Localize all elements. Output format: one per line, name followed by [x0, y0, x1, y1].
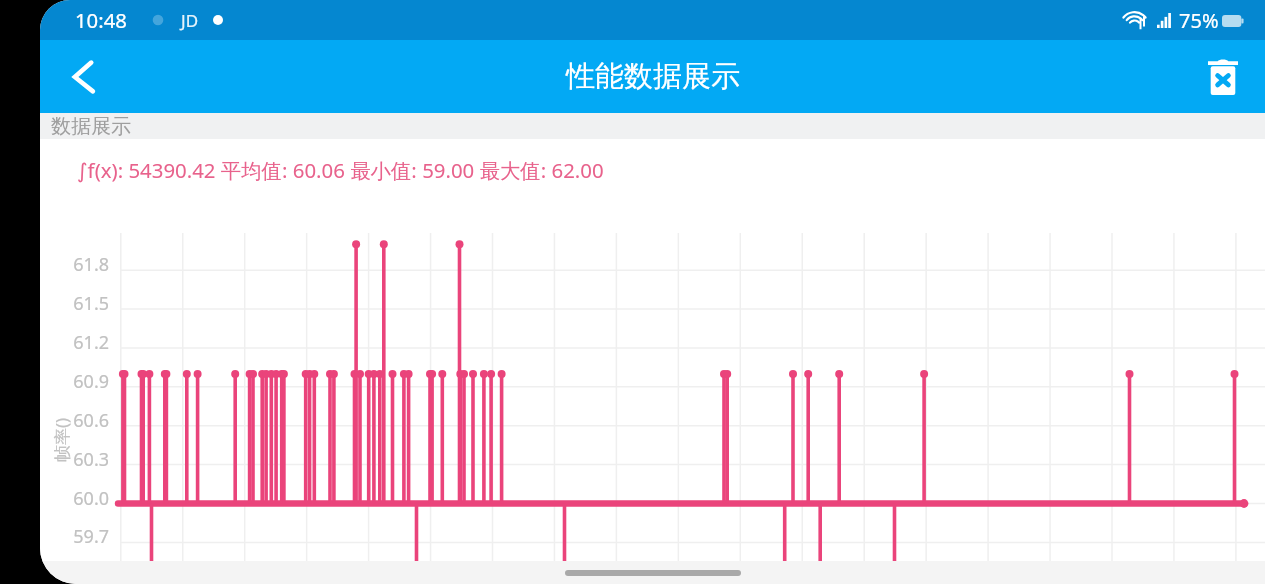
staticText: 60.3 [69, 447, 109, 472]
staticText: 61.2 [69, 330, 109, 355]
staticText: 75% [1179, 7, 1219, 34]
staticText: 60.6 [69, 408, 109, 433]
button[interactable]: Back [61, 57, 103, 97]
staticText: 60.0 [69, 486, 109, 511]
staticText: 10:48 [75, 6, 127, 34]
staticText: JD [181, 9, 199, 32]
staticText: 60.9 [69, 369, 109, 394]
button[interactable]: Delete [1208, 59, 1238, 95]
staticText: 61.5 [69, 291, 109, 316]
staticText: 性能数据展示 [566, 58, 740, 95]
staticText: 数据展示 [51, 114, 131, 139]
staticText: 帧率() [50, 417, 73, 462]
button[interactable]: 数据展示 [40, 113, 1265, 139]
staticText: 61.8 [69, 252, 109, 277]
staticText: ∫f(x): 54390.42 平均值: 60.06 最小值: 59.00 最大… [77, 156, 604, 184]
staticText: 59.7 [69, 524, 109, 549]
